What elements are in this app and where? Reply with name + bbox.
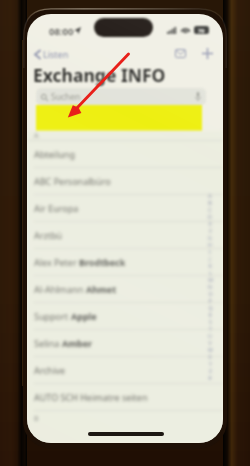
staticText: X xyxy=(208,353,212,360)
staticText: B xyxy=(34,414,39,424)
staticText: G xyxy=(208,234,212,241)
button[interactable]: ABC Personalbüro xyxy=(27,168,223,195)
button[interactable]: Abteilung xyxy=(27,141,223,168)
staticText: R xyxy=(208,311,212,318)
staticText: Exchange INFO xyxy=(33,63,166,87)
staticText: P xyxy=(208,297,212,304)
staticText: Suchen xyxy=(51,91,81,103)
staticText: AUTO SCH Heimatre seiten xyxy=(34,391,148,403)
button[interactable]: Arztbü xyxy=(27,222,223,249)
staticText: B xyxy=(208,199,212,206)
staticText: Z xyxy=(209,367,212,374)
staticText: Selina xyxy=(34,337,62,349)
staticText: M xyxy=(208,276,213,283)
button[interactable]: Suchen xyxy=(36,88,206,105)
staticText: U xyxy=(208,332,212,339)
staticText: Support xyxy=(34,310,71,322)
staticText: 08:00 xyxy=(49,25,74,38)
staticText: N xyxy=(208,283,212,290)
staticText: W xyxy=(208,346,213,353)
staticText: Abteilung xyxy=(34,148,75,160)
button[interactable]: Al-Ahlmann xyxy=(27,276,223,303)
button[interactable]: Add contact xyxy=(197,43,217,63)
button[interactable]: Alex Peter xyxy=(27,249,223,276)
staticText: Apple xyxy=(71,310,97,322)
staticText: Listen xyxy=(43,48,69,60)
button[interactable]: Selina xyxy=(27,330,223,357)
staticText: Al-Ahlmann xyxy=(34,283,86,295)
staticText: E xyxy=(209,220,212,227)
staticText: # xyxy=(208,374,212,381)
staticText: Alex Peter xyxy=(34,256,79,268)
staticText: Q xyxy=(208,304,213,311)
staticText: A xyxy=(208,192,212,199)
staticText: Air Europa xyxy=(34,202,79,214)
staticText: Amber xyxy=(62,337,93,349)
staticText: Ahmet xyxy=(86,283,117,295)
staticText: K xyxy=(208,262,212,269)
button[interactable]: AUTO SCH Heimatre seiten xyxy=(27,384,223,411)
staticText: Archive xyxy=(34,364,66,376)
button[interactable]: Listen xyxy=(34,47,69,61)
staticText: O xyxy=(208,290,213,297)
staticText: H xyxy=(208,241,212,248)
staticText: L xyxy=(209,269,212,276)
staticText: A xyxy=(34,131,39,140)
staticText: Arztbü xyxy=(34,229,63,241)
button[interactable]: Air Europa xyxy=(27,195,223,222)
button[interactable]: Mail xyxy=(170,43,190,63)
staticText: ABC Personalbüro xyxy=(34,175,111,187)
staticText: T xyxy=(209,325,212,332)
staticText: D xyxy=(208,213,212,220)
button[interactable]: Support xyxy=(27,303,223,330)
staticText: Brodtbeck xyxy=(79,256,126,268)
staticText: 70 xyxy=(198,27,205,34)
button[interactable]: Archive xyxy=(27,357,223,384)
